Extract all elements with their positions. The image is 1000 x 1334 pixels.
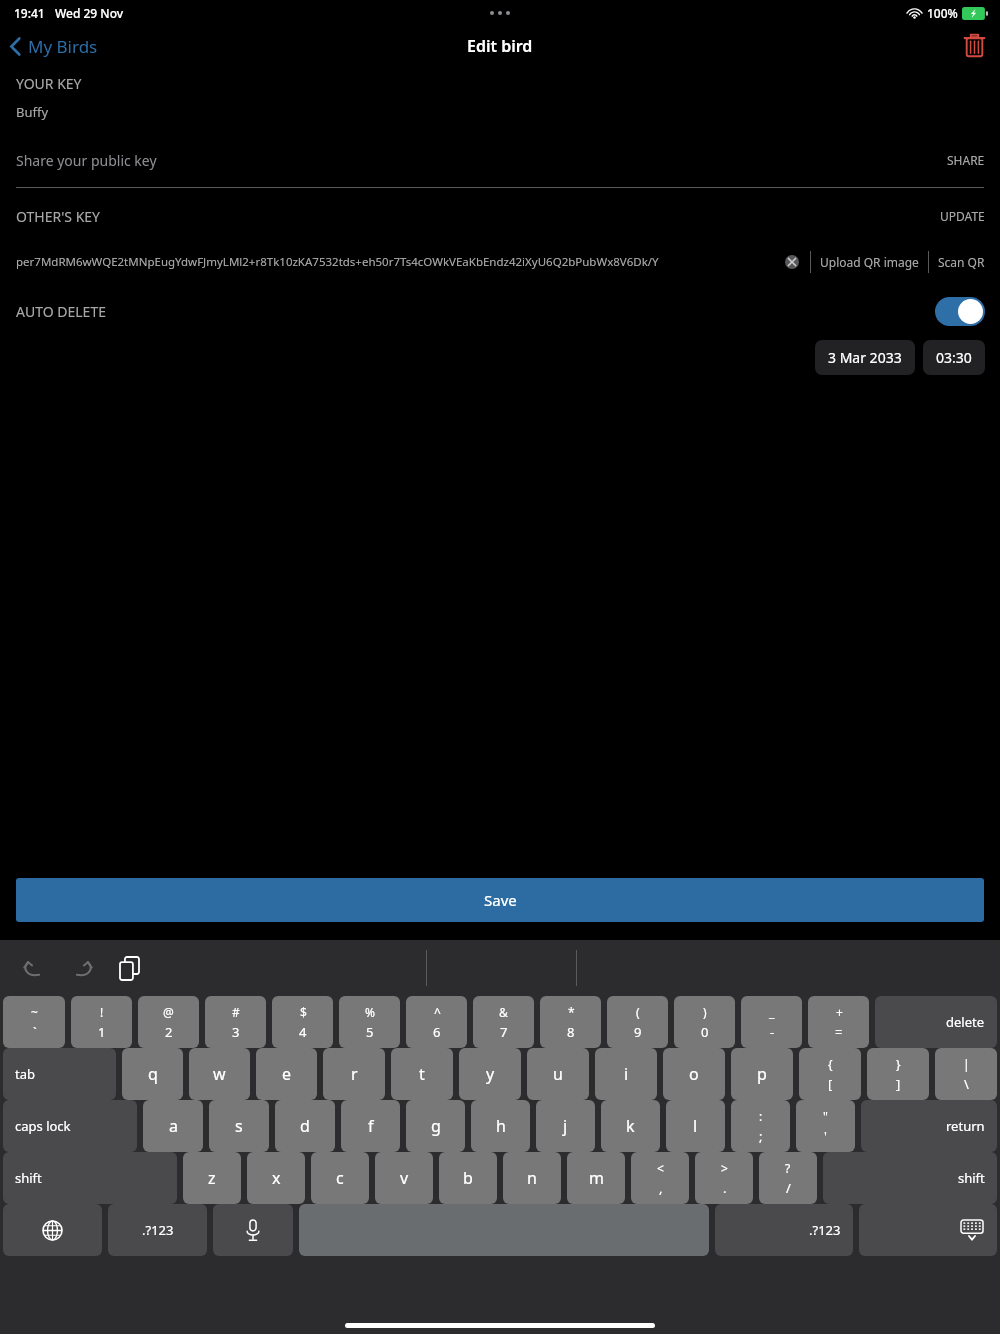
button[interactable]: : <box>731 1100 790 1152</box>
button[interactable]: Delete bird <box>949 28 1000 64</box>
button[interactable]: Scan QR <box>929 249 1000 275</box>
button[interactable]: j <box>536 1100 595 1152</box>
staticText: ] <box>896 1075 901 1093</box>
staticText: } <box>896 1056 901 1072</box>
button[interactable]: a <box>143 1100 203 1152</box>
staticText: u <box>553 1063 563 1085</box>
button[interactable]: return <box>861 1100 997 1152</box>
button[interactable]: .?123 <box>108 1204 207 1256</box>
button[interactable]: .?123 <box>715 1204 853 1256</box>
button[interactable]: Redo <box>64 952 102 986</box>
button[interactable]: ^ <box>406 996 467 1048</box>
staticText: f <box>368 1115 374 1137</box>
button[interactable]: % <box>339 996 400 1048</box>
staticText: 100% <box>927 5 958 21</box>
staticText: per7MdRM6wWQE2tMNpEugYdwFJmyLMl2+r8Tk10z… <box>16 254 659 270</box>
staticText: 03:30 <box>936 348 972 367</box>
staticText: Save <box>484 890 517 910</box>
button[interactable]: _ <box>741 996 802 1048</box>
button[interactable]: @ <box>138 996 199 1048</box>
button[interactable]: c <box>311 1152 369 1204</box>
button[interactable]: + <box>808 996 869 1048</box>
button[interactable]: Dictation <box>213 1204 293 1256</box>
button[interactable]: b <box>439 1152 497 1204</box>
staticText: tab <box>15 1065 35 1083</box>
button[interactable]: shift <box>823 1152 997 1204</box>
button[interactable]: My Birds <box>0 31 106 62</box>
button[interactable]: u <box>527 1048 589 1100</box>
button[interactable]: Undo <box>14 952 52 986</box>
button[interactable]: o <box>663 1048 725 1100</box>
staticText: 7 <box>500 1023 508 1041</box>
button[interactable]: caps lock <box>3 1100 137 1152</box>
staticText: 8 <box>567 1023 575 1041</box>
button[interactable]: $ <box>272 996 333 1048</box>
button[interactable]: Hide keyboard <box>859 1204 997 1256</box>
staticText: o <box>689 1063 699 1085</box>
button[interactable]: s <box>209 1100 269 1152</box>
button[interactable]: m <box>567 1152 625 1204</box>
button[interactable]: ! <box>71 996 132 1048</box>
button[interactable]: " <box>796 1100 855 1152</box>
button[interactable]: x <box>247 1152 305 1204</box>
staticText: @ <box>163 1004 174 1020</box>
staticText: : <box>759 1108 763 1124</box>
button[interactable]: { <box>799 1048 861 1100</box>
staticText: e <box>282 1063 292 1085</box>
button[interactable]: Save <box>16 878 984 922</box>
button[interactable]: SHARE <box>932 148 1000 172</box>
staticText: 19:41 <box>14 5 45 21</box>
staticText: 4 <box>299 1023 307 1041</box>
button[interactable]: | <box>935 1048 997 1100</box>
button[interactable]: 03:30 <box>923 340 985 375</box>
button[interactable]: z <box>183 1152 241 1204</box>
staticText: ^ <box>434 1004 441 1020</box>
button[interactable]: Clear key <box>780 255 804 269</box>
button[interactable]: f <box>341 1100 400 1152</box>
button[interactable]: k <box>601 1100 660 1152</box>
button[interactable]: l <box>666 1100 725 1152</box>
button[interactable]: 3 Mar 2033 <box>815 340 915 375</box>
staticText: 6 <box>433 1023 441 1041</box>
button[interactable]: e <box>256 1048 317 1100</box>
button[interactable]: ? <box>759 1152 817 1204</box>
button[interactable]: < <box>631 1152 689 1204</box>
button[interactable]: delete <box>875 996 997 1048</box>
button[interactable]: Paste <box>114 951 145 986</box>
button[interactable]: & <box>473 996 534 1048</box>
button[interactable]: } <box>867 1048 929 1100</box>
button[interactable]: r <box>323 1048 385 1100</box>
staticText: 9 <box>634 1023 642 1041</box>
button[interactable]: d <box>275 1100 335 1152</box>
button[interactable]: i <box>595 1048 657 1100</box>
staticText: ~ <box>31 1004 38 1020</box>
button[interactable]: ) <box>674 996 735 1048</box>
button[interactable]: * <box>540 996 601 1048</box>
staticText: shift <box>15 1169 42 1187</box>
button[interactable]: Switch keyboard <box>3 1204 102 1256</box>
staticText: b <box>463 1167 473 1189</box>
staticText: YOUR KEY <box>16 74 82 93</box>
button[interactable]: tab <box>3 1048 116 1100</box>
button[interactable]: # <box>205 996 266 1048</box>
button[interactable]: q <box>122 1048 183 1100</box>
button[interactable]: h <box>471 1100 530 1152</box>
button[interactable]: w <box>189 1048 250 1100</box>
button[interactable]: t <box>391 1048 453 1100</box>
button[interactable]: p <box>731 1048 793 1100</box>
button[interactable]: UPDATE <box>925 204 1000 228</box>
button[interactable]: Auto delete toggle, on <box>935 297 985 326</box>
button[interactable]: v <box>375 1152 433 1204</box>
button[interactable]: Upload QR image <box>811 249 928 275</box>
button[interactable]: ( <box>607 996 668 1048</box>
button[interactable]: shift <box>3 1152 177 1204</box>
staticText: z <box>208 1167 216 1189</box>
staticText: Scan QR <box>938 254 985 270</box>
button[interactable]: y <box>459 1048 521 1100</box>
button[interactable]: n <box>503 1152 561 1204</box>
staticText: > <box>721 1160 728 1176</box>
button[interactable]: g <box>406 1100 465 1152</box>
button[interactable]: > <box>695 1152 753 1204</box>
button[interactable]: ~ <box>3 996 65 1048</box>
